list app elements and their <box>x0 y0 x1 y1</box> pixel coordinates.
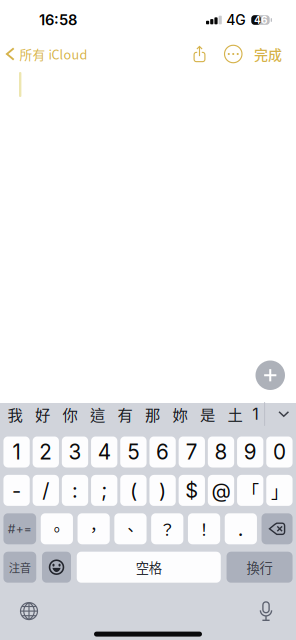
button[interactable]: ) <box>149 475 176 506</box>
staticText: 46 <box>254 14 267 26</box>
staticText: 換行 <box>247 557 273 577</box>
button[interactable]: 有 <box>111 396 139 431</box>
staticText: 9 <box>244 439 257 464</box>
button[interactable]: ， <box>78 513 110 544</box>
button[interactable]: 3 <box>62 436 88 467</box>
staticText: ; <box>101 478 107 502</box>
staticText: ！ <box>196 517 212 540</box>
staticText: / <box>42 478 49 502</box>
staticText: 是 <box>200 403 215 425</box>
button[interactable]: 9 <box>237 436 263 467</box>
button[interactable]: #+= <box>3 513 36 544</box>
staticText: 注音 <box>9 559 31 575</box>
button[interactable]: ？ <box>151 513 183 544</box>
staticText: 8 <box>214 439 227 464</box>
staticText: 那 <box>145 403 160 425</box>
staticText: 你 <box>62 403 77 425</box>
staticText: ？ <box>159 517 175 540</box>
button[interactable]: 所有 iCloud <box>0 39 91 69</box>
staticText: : <box>72 478 78 502</box>
button[interactable]: ( <box>120 475 146 506</box>
staticText: ( <box>130 478 137 502</box>
staticText: @ <box>211 478 230 502</box>
staticText: 」 <box>271 478 288 503</box>
staticText: 1 <box>13 439 21 464</box>
button[interactable]: $ <box>179 475 205 506</box>
staticText: 好 <box>35 403 50 425</box>
button[interactable] <box>262 513 293 544</box>
button[interactable]: 2 <box>33 436 59 467</box>
staticText: 3 <box>68 439 81 464</box>
button[interactable]: 5 <box>120 436 146 467</box>
staticText: 「 <box>242 478 259 503</box>
staticText: ) <box>159 478 166 502</box>
staticText: 有 <box>117 403 132 425</box>
button[interactable]: 換行 <box>227 552 293 583</box>
button[interactable] <box>42 552 71 583</box>
button[interactable]: 完成 <box>250 38 286 70</box>
button[interactable]: Dictation <box>248 601 284 622</box>
staticText: 土 <box>227 403 242 425</box>
staticText: 我 <box>7 403 22 425</box>
button[interactable]: 6 <box>149 436 176 467</box>
staticText: 4G <box>226 11 245 28</box>
staticText: ， <box>86 517 102 540</box>
button[interactable]: 7 <box>179 436 205 467</box>
button[interactable]: 」 <box>266 475 292 506</box>
staticText: 所有 iCloud <box>19 45 87 63</box>
button[interactable]: 8 <box>208 436 234 467</box>
button[interactable]: / <box>33 475 59 506</box>
button[interactable]: Switch keyboard <box>11 602 47 621</box>
staticText: 、 <box>122 517 138 540</box>
button[interactable]: ！ <box>188 513 220 544</box>
button[interactable]: 注音 <box>3 552 36 583</box>
staticText: 7 <box>186 439 198 464</box>
staticText: . <box>238 517 244 541</box>
button[interactable]: 空格 <box>77 552 221 583</box>
button[interactable]: ; <box>91 475 117 506</box>
staticText: 4 <box>98 439 111 464</box>
button[interactable]: 1 <box>3 436 30 467</box>
button[interactable]: @ <box>208 475 234 506</box>
button[interactable]: Share <box>187 42 211 66</box>
button[interactable]: 那 <box>139 396 166 431</box>
button[interactable]: More <box>219 41 247 67</box>
button[interactable]: 妳 <box>166 396 194 431</box>
button[interactable]: 我 <box>1 396 29 431</box>
staticText: 5 <box>127 439 139 464</box>
button[interactable]: 土 <box>221 396 249 431</box>
staticText: $ <box>185 478 198 502</box>
button[interactable]: : <box>62 475 88 506</box>
button[interactable]: 4 <box>91 436 117 467</box>
button[interactable]: 1 <box>249 396 263 431</box>
button[interactable]: Expand candidates <box>271 396 296 431</box>
staticText: 。 <box>49 517 65 540</box>
staticText: 6 <box>156 439 169 464</box>
staticText: 這 <box>90 403 105 425</box>
staticText: 0 <box>273 439 286 464</box>
button[interactable]: 0 <box>266 436 292 467</box>
staticText: 完成 <box>254 44 282 64</box>
button[interactable]: 是 <box>194 396 221 431</box>
staticText: 空格 <box>136 557 162 577</box>
button[interactable]: 你 <box>56 396 84 431</box>
staticText: 妳 <box>172 403 187 425</box>
button[interactable]: - <box>3 475 30 506</box>
button[interactable]: 「 <box>237 475 263 506</box>
button[interactable]: . <box>225 513 257 544</box>
button[interactable]: Add attachment <box>255 360 285 390</box>
staticText: #+= <box>8 521 32 536</box>
button[interactable]: 好 <box>29 396 56 431</box>
staticText: 1 <box>252 404 259 424</box>
button[interactable]: 、 <box>114 513 147 544</box>
staticText: - <box>12 478 21 502</box>
button[interactable]: 這 <box>84 396 111 431</box>
button[interactable]: 。 <box>41 513 73 544</box>
staticText: 2 <box>39 439 52 464</box>
staticText: 16:58 <box>39 11 77 29</box>
